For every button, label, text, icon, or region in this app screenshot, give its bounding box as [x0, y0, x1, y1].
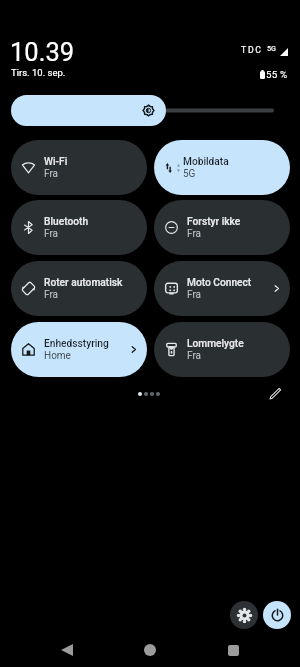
- button[interactable]: Bluetooth: [11, 200, 147, 255]
- button[interactable]: Wi-Fi: [11, 140, 147, 195]
- staticText: Home: [44, 350, 71, 362]
- staticText: Fra: [44, 228, 59, 240]
- staticText: 5G: [267, 44, 276, 52]
- button[interactable]: Home: [138, 638, 162, 662]
- staticText: Fra: [187, 289, 202, 301]
- button[interactable]: Back: [55, 638, 79, 662]
- staticText: Fra: [44, 289, 59, 301]
- button[interactable]: Edit: [264, 382, 286, 404]
- staticText: Mobildata: [183, 156, 229, 168]
- button[interactable]: Power: [263, 601, 291, 629]
- staticText: Fra: [187, 350, 202, 362]
- button[interactable]: Moto Connect: [154, 261, 290, 316]
- button[interactable]: Mobildata: [154, 140, 290, 195]
- button[interactable]: Lommelygte: [154, 322, 290, 377]
- staticText: 10.39: [10, 37, 75, 67]
- staticText: 55 %: [266, 69, 288, 80]
- staticText: Fra: [187, 228, 202, 240]
- staticText: Enhedsstyring: [44, 338, 109, 350]
- button[interactable]: Recents: [221, 638, 245, 662]
- staticText: Forstyr ikke: [187, 216, 241, 228]
- button[interactable]: Forstyr ikke: [154, 200, 290, 255]
- staticText: Fra: [44, 168, 59, 180]
- button[interactable]: Brightness: [11, 95, 166, 126]
- button[interactable]: Settings: [230, 601, 258, 629]
- staticText: Roter automatisk: [44, 277, 123, 289]
- button[interactable]: Roter automatisk: [11, 261, 147, 316]
- staticText: Moto Connect: [187, 277, 252, 289]
- staticText: TDC: [241, 45, 263, 55]
- staticText: Wi-Fi: [44, 156, 68, 168]
- staticText: Bluetooth: [44, 216, 89, 228]
- staticText: Lommelygte: [187, 338, 244, 350]
- staticText: 5G: [183, 168, 196, 180]
- button[interactable]: Enhedsstyring: [11, 322, 147, 377]
- staticText: Tirs. 10. sep.: [11, 67, 66, 78]
